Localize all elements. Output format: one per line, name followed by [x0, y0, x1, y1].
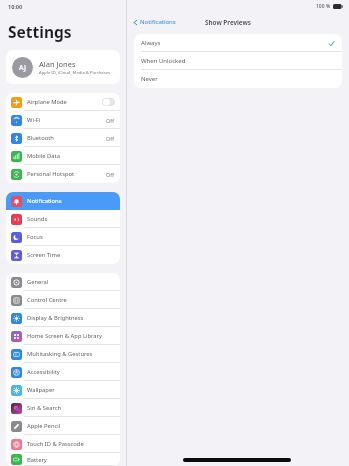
button[interactable]: Wallpaper [6, 381, 120, 399]
button[interactable]: General [6, 273, 120, 291]
staticText: Wi-Fi [27, 116, 106, 124]
button[interactable]: Display & Brightness [6, 309, 120, 327]
button[interactable]: Siri & Search [6, 399, 120, 417]
button[interactable]: Touch ID & Passcode [6, 435, 120, 453]
staticText: Display & Brightness [27, 314, 115, 322]
button[interactable]: Wi-Fi [6, 111, 120, 129]
button[interactable]: Never [134, 70, 342, 88]
staticText: Apple Pencil [27, 422, 115, 430]
button[interactable]: When Unlocked [134, 52, 342, 70]
button[interactable]: Apple Pencil [6, 417, 120, 435]
button[interactable]: AJ [6, 50, 120, 84]
button[interactable]: Notifications [6, 192, 120, 210]
staticText: 10:00 [8, 3, 23, 10]
button[interactable]: Battery [6, 453, 120, 466]
button[interactable]: Back to Notifications [132, 18, 176, 26]
staticText: Sounds [27, 215, 115, 223]
other: Back to Notifications [132, 19, 139, 26]
staticText: Alan Jones [39, 59, 76, 69]
staticText: Never [141, 75, 335, 83]
staticText: General [27, 278, 115, 286]
staticText: Multitasking & Gestures [27, 350, 115, 358]
staticText: Notifications [140, 18, 176, 26]
staticText: Touch ID & Passcode [27, 440, 115, 448]
staticText: Notifications [27, 197, 115, 205]
staticText: Airplane Mode [27, 98, 102, 106]
staticText: Off [106, 135, 115, 142]
staticText: Screen Time [27, 251, 115, 259]
button[interactable]: Control Centre [6, 291, 120, 309]
button[interactable]: Screen Time [6, 246, 120, 264]
staticText: Control Centre [27, 296, 115, 304]
staticText: Personal Hotspot [27, 170, 106, 178]
staticText: When Unlocked [141, 57, 335, 65]
button[interactable]: Focus [6, 228, 120, 246]
button[interactable]: Bluetooth [6, 129, 120, 147]
button[interactable]: Airplane Mode [6, 93, 120, 111]
staticText: Accessibility [27, 368, 115, 376]
staticText: Always [141, 39, 328, 47]
staticText: 100 % [316, 3, 331, 10]
staticText: Focus [27, 233, 115, 241]
staticText: Settings [8, 21, 72, 42]
staticText: Home Screen & App Library [27, 332, 115, 340]
staticText: Apple ID, iCloud, Media & Purchases [39, 70, 111, 76]
button[interactable]: Mobile Data [6, 147, 120, 165]
staticText: Battery [27, 456, 115, 464]
button[interactable]: Sounds [6, 210, 120, 228]
staticText: Show Previews [205, 18, 251, 27]
staticText: AJ [19, 63, 26, 73]
staticText: Wallpaper [27, 386, 115, 394]
button[interactable]: Accessibility [6, 363, 120, 381]
button[interactable]: Personal Hotspot [6, 165, 120, 183]
staticText: Mobile Data [27, 152, 115, 160]
staticText: Bluetooth [27, 134, 106, 142]
staticText: Off [106, 171, 115, 178]
staticText: Siri & Search [27, 404, 115, 412]
button[interactable]: Multitasking & Gestures [6, 345, 120, 363]
button[interactable]: Always [134, 34, 342, 52]
button[interactable]: Home Screen & App Library [6, 327, 120, 345]
staticText: Off [106, 117, 115, 124]
